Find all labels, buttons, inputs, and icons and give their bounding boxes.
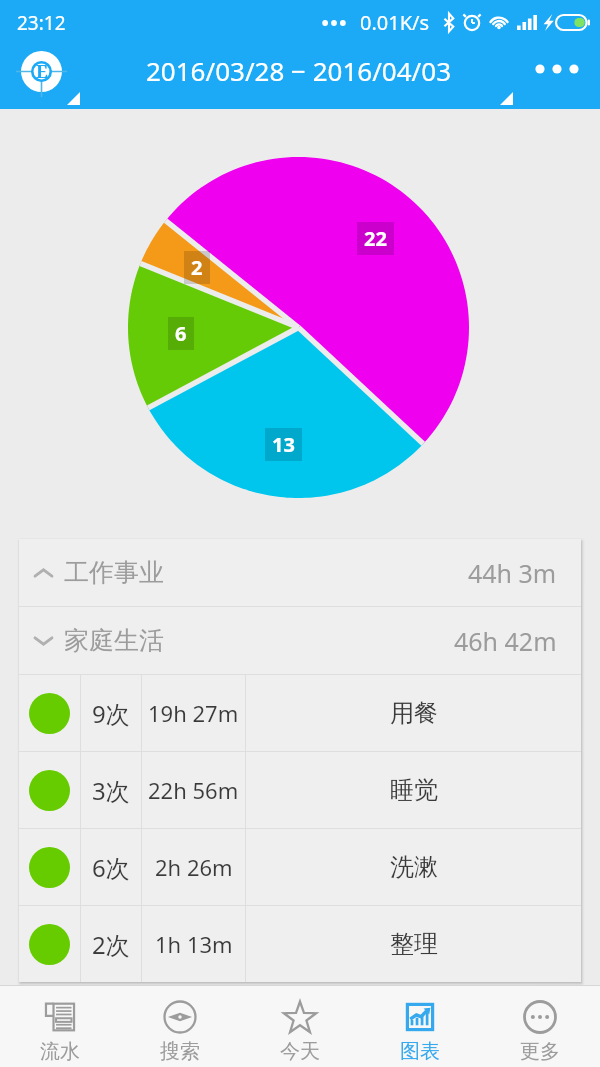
staticText: 46h 42m [454,624,557,658]
staticText: 2 [191,254,203,281]
button[interactable]: More options [528,46,588,92]
staticText: 家庭生活 [64,625,164,656]
button[interactable]: 2次 [19,906,581,982]
staticText: 搜索 [160,1039,200,1064]
staticText: 流水 [40,1039,80,1064]
staticText: 睡觉 [390,775,438,805]
staticText: 6 [175,320,187,347]
button[interactable]: 家庭生活 [19,607,581,674]
staticText: 23:12 [17,10,66,36]
staticText: 9次 [92,697,130,730]
staticText: 1h 13m [155,929,233,959]
staticText: 19h 27m [148,698,239,728]
button[interactable]: 工作事业 [19,539,581,606]
staticText: 工作事业 [64,557,164,588]
staticText: 0.01K/s [360,9,430,36]
staticText: E [36,59,48,84]
button[interactable]: App logo [21,51,62,92]
staticText: 3次 [92,774,130,807]
button[interactable]: 今天 [240,986,360,1067]
staticText: 洗漱 [390,852,438,882]
staticText: 2次 [92,928,130,961]
staticText: 更多 [520,1039,560,1064]
button[interactable]: 9次 [19,675,581,751]
staticText: 2016/03/28 − 2016/04/03 [146,53,452,88]
button[interactable]: 6次 [19,829,581,905]
button[interactable]: 3次 [19,752,581,828]
staticText: 6次 [92,851,130,884]
button[interactable]: 图表 [360,986,480,1067]
button[interactable]: 流水 [0,986,120,1067]
staticText: 22 [364,225,387,252]
button[interactable]: 搜索 [120,986,240,1067]
staticText: 2h 26m [155,852,233,882]
staticText: 13 [272,431,295,458]
button[interactable]: 更多 [480,986,600,1067]
staticText: 44h 3m [468,556,557,590]
staticText: 图表 [400,1039,440,1064]
staticText: 用餐 [390,698,438,728]
staticText: 整理 [390,929,438,959]
staticText: 今天 [280,1039,320,1064]
staticText: 22h 56m [148,775,239,805]
